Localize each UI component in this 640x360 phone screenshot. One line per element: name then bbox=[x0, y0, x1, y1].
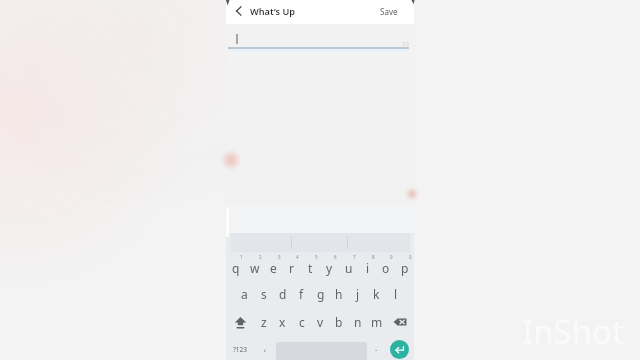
staticText: j bbox=[356, 286, 360, 302]
staticText: 2 bbox=[259, 254, 262, 260]
button[interactable]: 3 bbox=[264, 252, 283, 278]
button[interactable]: v bbox=[311, 309, 330, 335]
button[interactable]: 4 bbox=[282, 252, 301, 278]
button[interactable]: 2 bbox=[245, 252, 264, 278]
staticText: c bbox=[299, 314, 305, 330]
staticText: l bbox=[394, 286, 398, 302]
staticText: o bbox=[382, 260, 390, 276]
button[interactable]: a bbox=[235, 281, 254, 307]
staticText: p bbox=[401, 260, 409, 276]
staticText: s bbox=[261, 286, 267, 302]
staticText: g bbox=[317, 286, 325, 302]
button[interactable]: Backspace bbox=[386, 309, 414, 335]
button[interactable]: j bbox=[348, 281, 367, 307]
staticText: 7 bbox=[353, 254, 356, 260]
button[interactable]: l bbox=[386, 281, 405, 307]
button[interactable]: 6 bbox=[320, 252, 339, 278]
staticText: f bbox=[299, 286, 304, 302]
staticText: , bbox=[264, 342, 267, 353]
button[interactable]: 8 bbox=[358, 252, 377, 278]
staticText: t bbox=[308, 260, 313, 276]
staticText: ?123 bbox=[233, 345, 247, 354]
button[interactable]: 7 bbox=[339, 252, 358, 278]
staticText: e bbox=[270, 260, 277, 276]
staticText: 1 bbox=[240, 254, 243, 260]
staticText: 8 bbox=[372, 254, 375, 260]
staticText: 6 bbox=[334, 254, 337, 260]
staticText: y bbox=[326, 260, 333, 276]
button[interactable]: 0 bbox=[395, 252, 414, 278]
button[interactable]: 1 bbox=[226, 252, 245, 278]
button[interactable]: z bbox=[254, 309, 273, 335]
staticText: m bbox=[371, 314, 383, 330]
button[interactable]: 5 bbox=[301, 252, 320, 278]
button[interactable]: d bbox=[273, 281, 292, 307]
staticText: Save bbox=[380, 6, 398, 17]
button[interactable]: Save bbox=[376, 4, 402, 19]
button[interactable]: m bbox=[367, 309, 386, 335]
staticText: What’s Up bbox=[250, 5, 296, 18]
button[interactable]: g bbox=[311, 281, 330, 307]
staticText: 4 bbox=[296, 254, 299, 260]
staticText: 25 bbox=[402, 40, 409, 48]
staticText: v bbox=[317, 314, 324, 330]
staticText: h bbox=[335, 286, 343, 302]
staticText: x bbox=[279, 314, 286, 330]
staticText: q bbox=[232, 260, 240, 276]
staticText: 9 bbox=[390, 254, 393, 260]
button[interactable]: c bbox=[292, 309, 311, 335]
staticText: 3 bbox=[278, 254, 281, 260]
staticText: r bbox=[289, 260, 294, 276]
staticText: z bbox=[261, 314, 267, 330]
staticText: b bbox=[335, 314, 343, 330]
button[interactable]: n bbox=[348, 309, 367, 335]
button[interactable]: x bbox=[273, 309, 292, 335]
button[interactable]: k bbox=[367, 281, 386, 307]
staticText: w bbox=[250, 260, 260, 276]
button[interactable]: h bbox=[329, 281, 348, 307]
staticText: 0 bbox=[409, 254, 412, 260]
button[interactable]: s bbox=[254, 281, 273, 307]
button[interactable]: . bbox=[368, 336, 384, 360]
staticText: a bbox=[241, 286, 248, 302]
staticText: . bbox=[375, 342, 378, 353]
staticText: i bbox=[366, 260, 370, 276]
button[interactable]: , bbox=[256, 336, 274, 360]
staticText: u bbox=[345, 260, 353, 276]
button[interactable]: Back bbox=[231, 3, 246, 18]
button[interactable]: Shift bbox=[226, 309, 254, 335]
button[interactable]: Enter bbox=[388, 338, 410, 360]
button[interactable]: f bbox=[292, 281, 311, 307]
staticText: k bbox=[373, 286, 380, 302]
staticText: 5 bbox=[315, 254, 318, 260]
button[interactable]: 9 bbox=[376, 252, 395, 278]
staticText: d bbox=[279, 286, 287, 302]
button[interactable]: b bbox=[329, 309, 348, 335]
staticText: n bbox=[354, 314, 362, 330]
button[interactable]: ?123 bbox=[228, 336, 252, 360]
